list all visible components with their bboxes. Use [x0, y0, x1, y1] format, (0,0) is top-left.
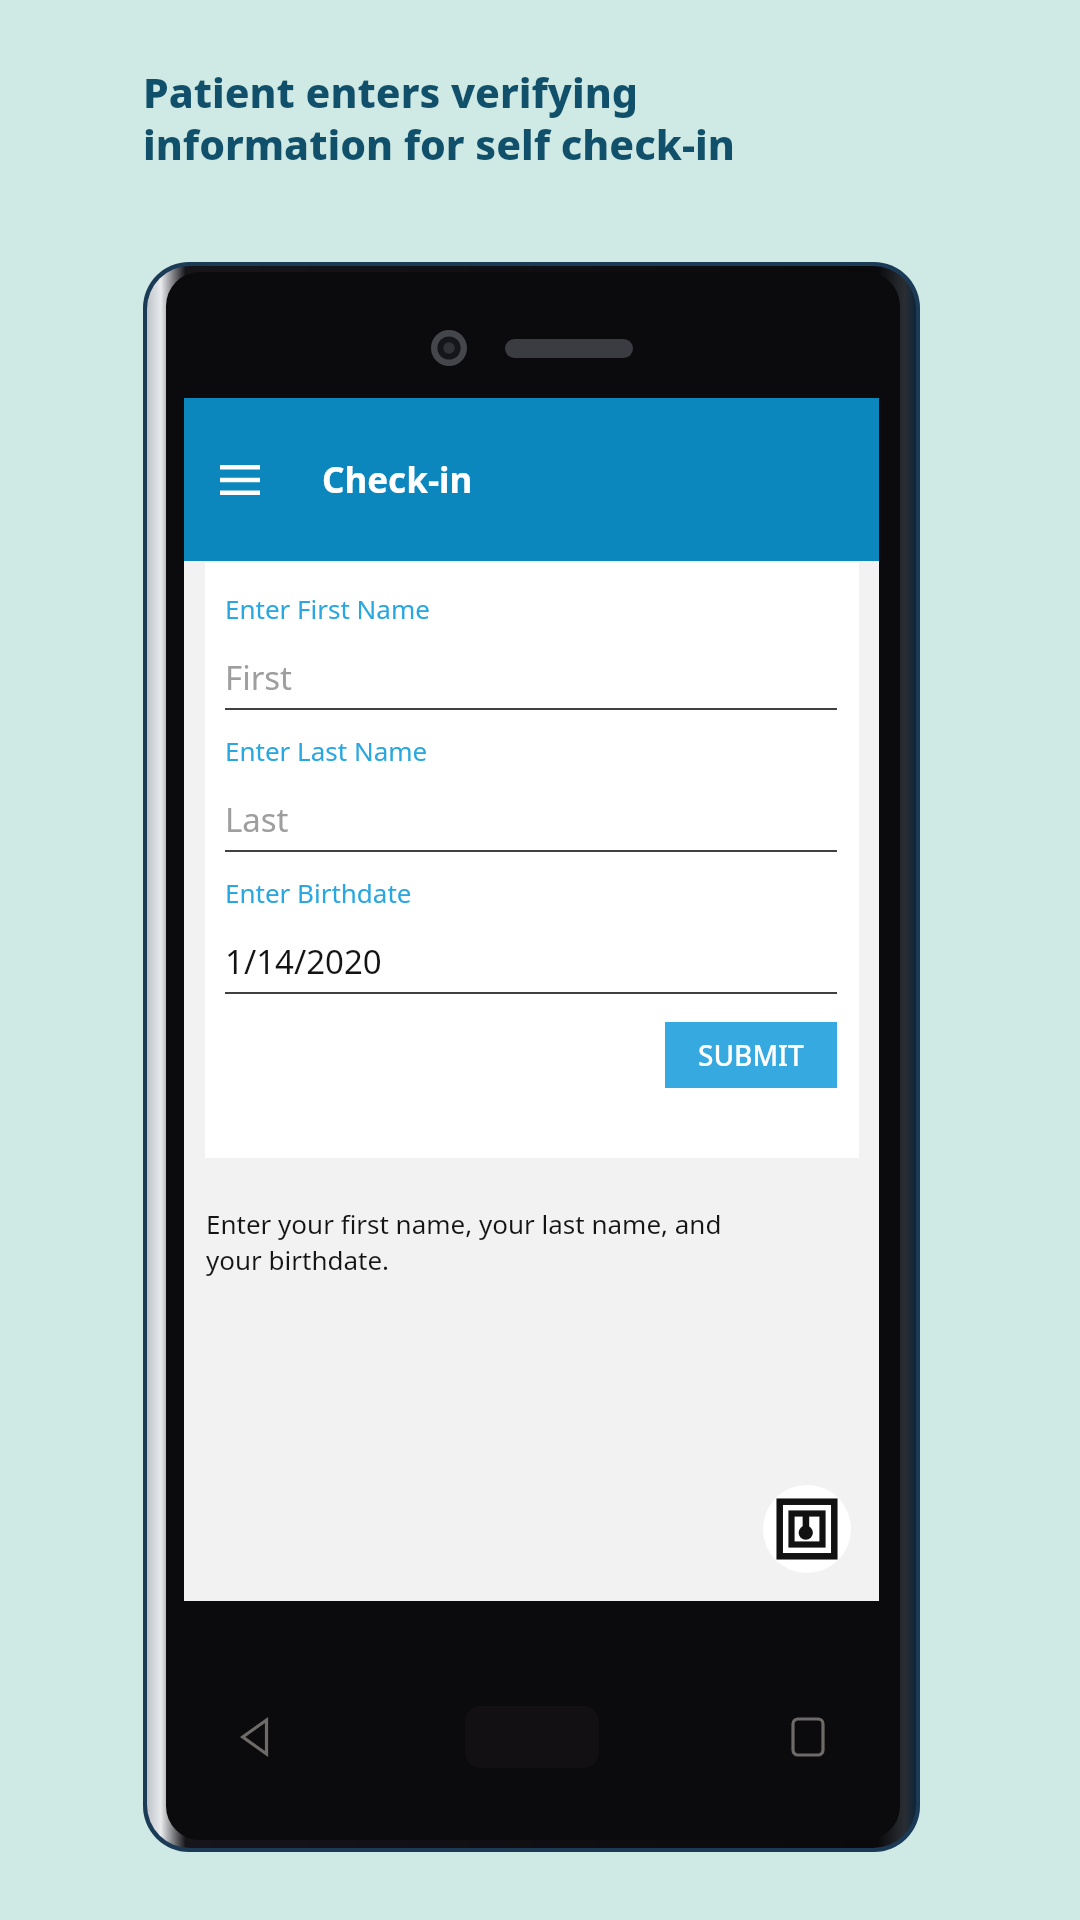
- staticText: Last: [225, 797, 289, 842]
- staticText: Check-in: [322, 456, 473, 504]
- button[interactable]: SUBMIT: [665, 1022, 837, 1088]
- button[interactable]: Enter Last Name: [225, 733, 837, 852]
- staticText: 1/14/2020: [225, 939, 382, 984]
- staticText: Enter Birthdate: [225, 875, 412, 910]
- staticText: First: [225, 655, 292, 700]
- button[interactable]: Back: [240, 1720, 274, 1754]
- staticText: Patient enters verifying information for…: [143, 64, 735, 172]
- button[interactable]: Recents: [793, 1719, 823, 1755]
- button[interactable]: Enter Birthdate: [225, 875, 837, 994]
- button[interactable]: Open navigation menu: [206, 446, 274, 514]
- staticText: Enter First Name: [225, 591, 430, 626]
- button[interactable]: NFC: [763, 1485, 851, 1573]
- staticText: Enter Last Name: [225, 733, 428, 768]
- button[interactable]: Enter First Name: [225, 591, 837, 710]
- staticText: SUBMIT: [698, 1036, 804, 1074]
- staticText: Enter your first name, your last name, a…: [206, 1206, 722, 1278]
